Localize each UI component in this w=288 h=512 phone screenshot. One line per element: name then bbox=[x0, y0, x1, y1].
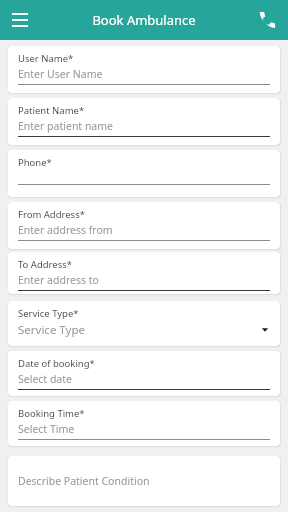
button[interactable]: Open navigation menu bbox=[8, 8, 32, 32]
button[interactable]: Booking Time* bbox=[8, 401, 280, 446]
staticText: To Address* bbox=[18, 258, 73, 271]
staticText: Date of booking* bbox=[18, 357, 95, 370]
staticText: Enter patient name bbox=[18, 119, 114, 133]
staticText: Select date bbox=[18, 372, 72, 386]
button[interactable]: To Address* bbox=[8, 252, 280, 294]
staticText: Book Ambulance bbox=[92, 11, 196, 29]
button[interactable]: From Address* bbox=[8, 202, 280, 249]
button[interactable]: Describe Patient Condition bbox=[8, 456, 280, 506]
staticText: Select Time bbox=[18, 422, 75, 436]
button[interactable]: Service Type* bbox=[8, 301, 280, 346]
staticText: Enter User Name bbox=[18, 67, 103, 81]
staticText: Booking Time* bbox=[18, 407, 85, 420]
staticText: Describe Patient Condition bbox=[18, 474, 150, 488]
button[interactable]: Call bbox=[254, 7, 280, 33]
staticText: Enter address from bbox=[18, 223, 113, 237]
button[interactable]: User Name* bbox=[8, 46, 280, 93]
button[interactable]: Date of booking* bbox=[8, 351, 280, 396]
staticText: From Address* bbox=[18, 208, 85, 221]
staticText: Patient Name* bbox=[18, 104, 85, 117]
staticText: Service Type* bbox=[18, 307, 79, 320]
staticText: Phone* bbox=[18, 156, 52, 169]
staticText: Enter address to bbox=[18, 273, 99, 287]
staticText: Service Type bbox=[18, 322, 85, 338]
button[interactable]: Phone* bbox=[8, 150, 280, 197]
button[interactable]: Patient Name* bbox=[8, 98, 280, 145]
staticText: User Name* bbox=[18, 52, 74, 65]
